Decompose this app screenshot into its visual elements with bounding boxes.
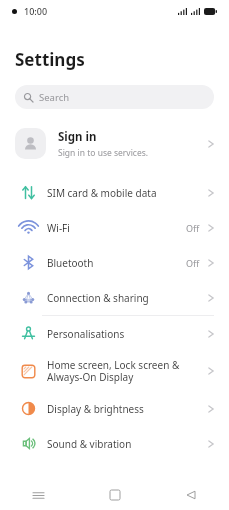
- button[interactable]: Sign in: [0, 124, 229, 163]
- staticText: SIM card & mobile data: [47, 186, 208, 200]
- button[interactable]: Bluetooth: [0, 245, 229, 280]
- button[interactable]: Home screen, Lock screen & Always-On Dis…: [0, 351, 229, 391]
- staticText: Sign in: [58, 129, 97, 145]
- button[interactable]: Search: [15, 85, 214, 109]
- button[interactable]: Home: [77, 480, 153, 510]
- button[interactable]: SIM card & mobile data: [0, 175, 229, 210]
- button[interactable]: Wi-Fi: [0, 210, 229, 245]
- staticText: Sign in to use services.: [58, 147, 149, 159]
- button[interactable]: Back: [153, 480, 229, 510]
- button[interactable]: Connection & sharing: [0, 280, 229, 315]
- staticText: Settings: [15, 48, 85, 71]
- staticText: Off: [186, 222, 200, 234]
- staticText: Connection & sharing: [47, 291, 208, 305]
- button[interactable]: Sound & vibration: [0, 426, 229, 461]
- staticText: Sound & vibration: [47, 437, 208, 451]
- staticText: Search: [39, 91, 70, 104]
- staticText: Display & brightness: [47, 402, 208, 416]
- staticText: Bluetooth: [47, 256, 186, 270]
- staticText: Wi-Fi: [47, 221, 186, 235]
- button[interactable]: Recent apps: [0, 480, 77, 510]
- staticText: 10:00: [24, 5, 48, 17]
- button[interactable]: Personalisations: [0, 316, 229, 351]
- staticText: Home screen, Lock screen & Always-On Dis…: [47, 358, 208, 384]
- staticText: Off: [186, 257, 200, 269]
- button[interactable]: Display & brightness: [0, 391, 229, 426]
- staticText: Personalisations: [47, 327, 208, 341]
